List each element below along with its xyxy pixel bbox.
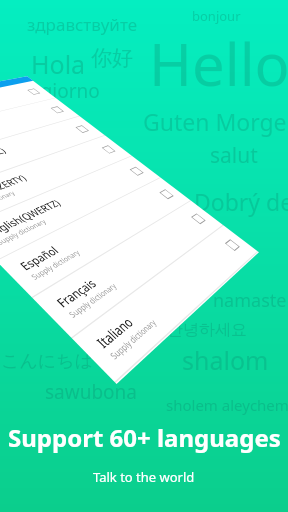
staticText: здравствуйте	[27, 13, 138, 36]
staticText: English(AZERTY)	[0, 172, 29, 207]
staticText: English(QWERTZ)	[0, 197, 64, 239]
staticText: sholem aleychem	[166, 395, 288, 415]
staticText: Support 60+ languages	[8, 421, 281, 454]
staticText: Talk to the world	[93, 468, 195, 486]
staticText: sawubona	[45, 379, 138, 405]
staticText: Français	[52, 275, 100, 311]
staticText: Supply dictionary	[108, 317, 160, 363]
staticText: Supply dictionary	[29, 248, 83, 283]
staticText: Deutsch(QWERTZ)	[0, 145, 9, 178]
staticText: Supply dictionary	[66, 281, 120, 321]
staticText: Hola	[31, 47, 86, 81]
staticText: shalom	[182, 343, 269, 377]
staticText: 你好	[91, 45, 133, 71]
staticText: 안녕하세요	[167, 320, 247, 340]
staticText: Guten Morgen	[143, 106, 288, 137]
staticText: namaste	[213, 288, 287, 313]
staticText: Supply dictionary	[0, 218, 49, 247]
staticText: Hello	[149, 24, 288, 103]
staticText: Italiano	[92, 313, 137, 352]
staticText: bonjour	[192, 7, 241, 25]
staticText: こんにちは	[1, 350, 94, 373]
staticText: Español	[16, 243, 62, 273]
staticText: Supply dictionary	[0, 189, 18, 215]
staticText: Dobrý den	[194, 186, 288, 217]
staticText: buongiorno	[0, 78, 100, 104]
staticText: salut	[210, 141, 258, 170]
